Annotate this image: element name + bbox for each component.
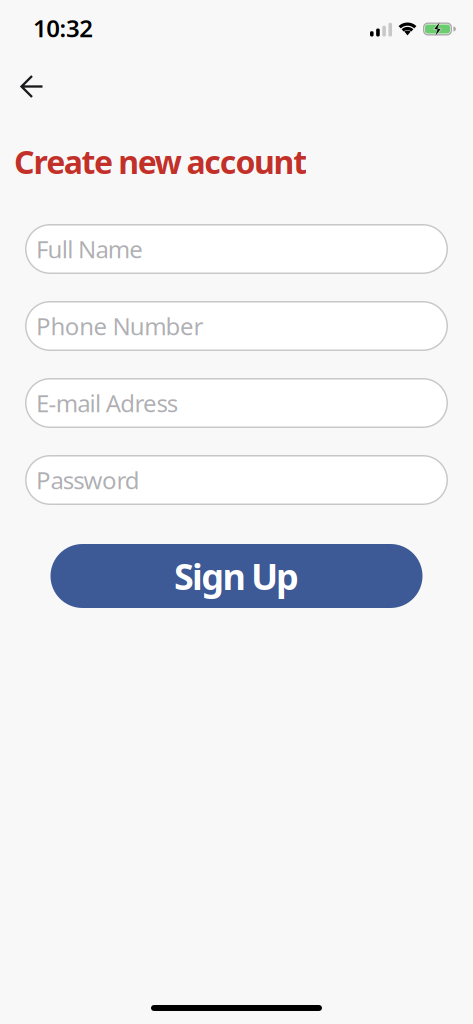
button[interactable]: Password — [25, 455, 448, 505]
button[interactable]: Sign Up — [50, 544, 422, 608]
staticText: 10:32 — [33, 12, 93, 44]
button[interactable]: Full Name — [25, 224, 448, 274]
button[interactable]: Phone Number — [25, 301, 448, 351]
staticText: Phone Number — [36, 310, 203, 342]
button[interactable]: E-mail Adress — [25, 378, 448, 428]
staticText: Create new account — [14, 140, 307, 183]
staticText: Sign Up — [174, 552, 299, 600]
staticText: Password — [36, 464, 140, 496]
staticText: Full Name — [36, 233, 143, 265]
staticText: E-mail Adress — [36, 387, 178, 419]
button[interactable]: Back — [9, 64, 53, 108]
